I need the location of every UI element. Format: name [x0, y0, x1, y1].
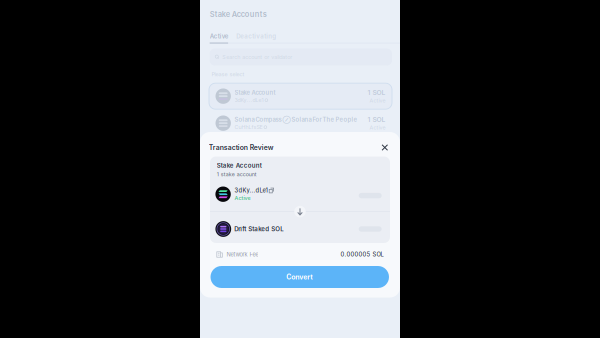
staticText: Stake Account: [217, 162, 262, 169]
staticText: Transaction Review: [209, 143, 274, 152]
staticText: 0.000005 SOL: [340, 251, 383, 258]
staticText: Stake Accounts: [210, 10, 267, 19]
staticText: Active: [210, 32, 229, 40]
staticText: Active: [369, 124, 385, 131]
staticText: Stake Account: [234, 89, 275, 96]
staticText: CuHhLfsSE: [234, 124, 262, 130]
staticText: 3dKy...dLe1: [234, 187, 267, 194]
staticText: Active: [369, 97, 385, 104]
staticText: Drift Staked SOL: [234, 225, 283, 233]
staticText: 3dKy...dLe1: [234, 97, 263, 103]
staticText: 1 SOL: [367, 88, 385, 97]
staticText: Please select: [211, 71, 244, 78]
staticText: Network Fee: [226, 251, 258, 258]
staticText: Search account or validator: [222, 54, 292, 60]
staticText: Convert: [286, 273, 313, 281]
staticText: 1 SOL: [367, 115, 385, 124]
button[interactable]: Close: [379, 142, 390, 153]
staticText: 1 stake account: [217, 171, 257, 178]
button[interactable]: Convert: [210, 266, 389, 288]
staticText: Active: [234, 195, 250, 201]
staticText: Deactivating: [236, 32, 276, 40]
staticText: Solana Compass ⊘ Solana For The People: [234, 116, 357, 123]
